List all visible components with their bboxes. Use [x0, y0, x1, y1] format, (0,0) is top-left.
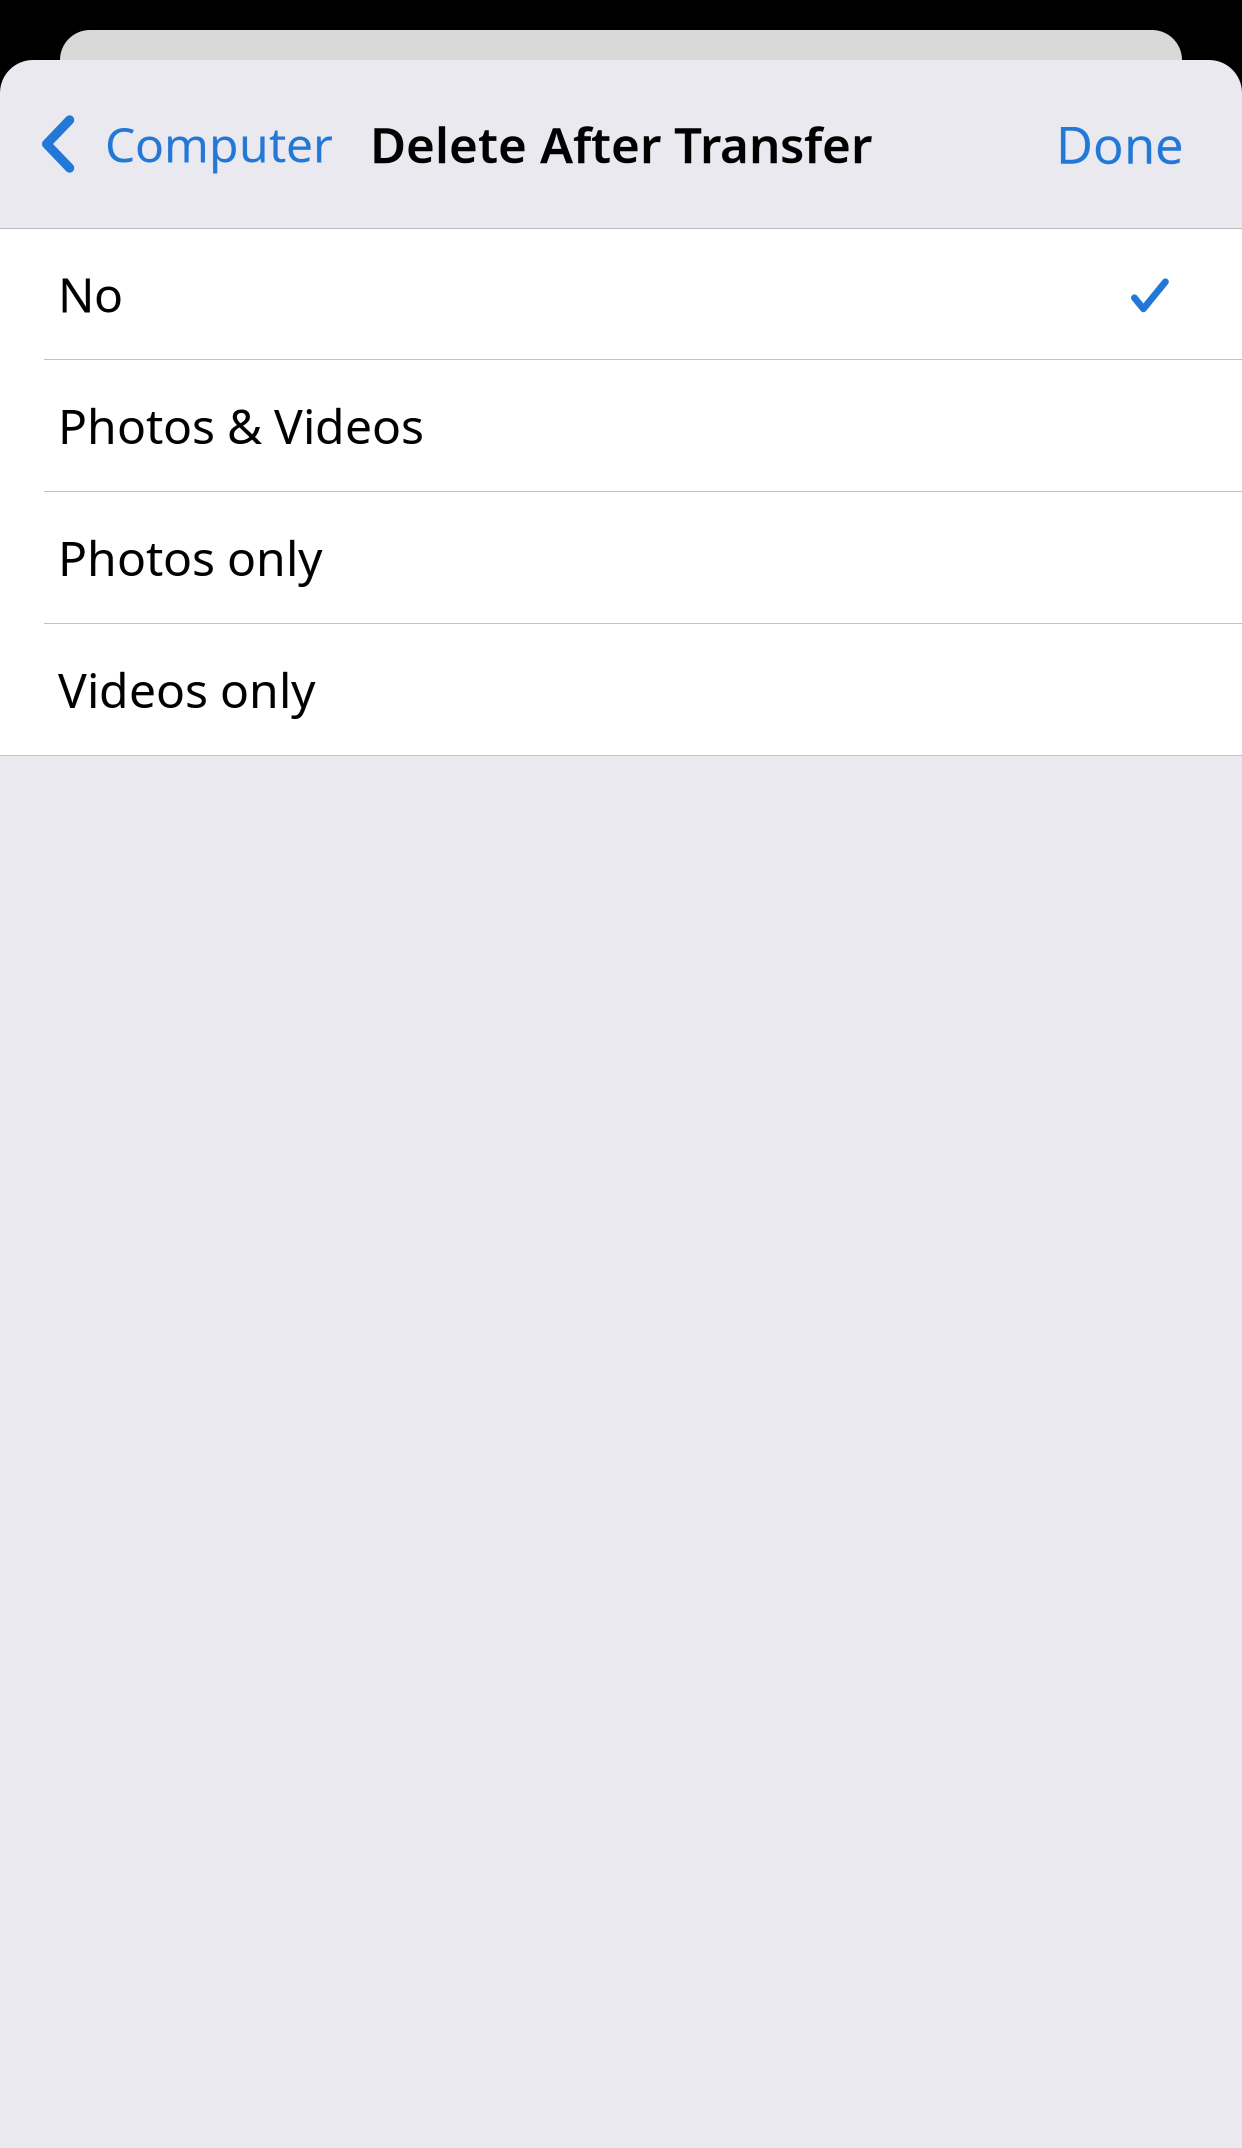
staticText: Photos only [58, 526, 322, 589]
staticText: Delete After Transfer [370, 111, 872, 177]
button[interactable]: Done [1032, 60, 1242, 228]
staticText: Videos only [58, 658, 315, 721]
staticText: No [58, 262, 123, 326]
button[interactable]: Photos only [0, 492, 1242, 624]
button[interactable]: Videos only [0, 624, 1242, 755]
staticText: Computer [105, 112, 333, 176]
button[interactable]: Photos & Videos [0, 360, 1242, 492]
staticText: Done [1056, 110, 1184, 178]
button[interactable]: Back to Computer [0, 60, 351, 228]
button[interactable]: No [0, 229, 1242, 360]
staticText: Photos & Videos [58, 394, 424, 457]
